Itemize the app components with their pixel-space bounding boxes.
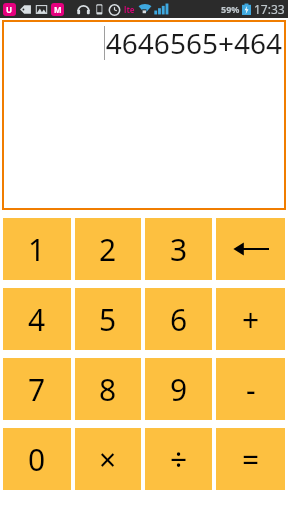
staticText: + (242, 299, 260, 340)
staticText: U (6, 4, 13, 15)
button[interactable]: 3 (145, 218, 212, 280)
button[interactable]: ÷ (145, 428, 212, 490)
button[interactable]: 6 (145, 288, 212, 350)
button[interactable]: 4 (3, 288, 71, 350)
staticText: 9 (170, 369, 188, 410)
staticText: × (99, 439, 117, 480)
button[interactable]: Backspace (216, 218, 285, 280)
button[interactable]: = (216, 428, 285, 490)
button[interactable]: - (216, 358, 285, 420)
button[interactable]: + (216, 288, 285, 350)
staticText: ÷ (170, 439, 188, 480)
staticText: 1 (28, 229, 46, 270)
button[interactable]: 2 (75, 218, 141, 280)
staticText: 17:33 (254, 1, 285, 17)
staticText: = (242, 439, 260, 480)
button[interactable]: 1 (3, 218, 71, 280)
staticText: lte (124, 4, 135, 15)
staticText: M (54, 4, 62, 15)
button[interactable]: 9 (145, 358, 212, 420)
button[interactable]: 0 (3, 428, 71, 490)
staticText: 4646565+464 (105, 24, 282, 62)
staticText: - (246, 369, 256, 410)
staticText: 3 (170, 229, 188, 270)
staticText: 7 (28, 369, 46, 410)
button[interactable]: 8 (75, 358, 141, 420)
button[interactable]: 5 (75, 288, 141, 350)
button[interactable]: × (75, 428, 141, 490)
button[interactable]: 7 (3, 358, 71, 420)
staticText: 2 (99, 229, 117, 270)
staticText: 5 (99, 299, 117, 340)
staticText: 8 (99, 369, 117, 410)
staticText: 59% (221, 3, 240, 15)
staticText: 4 (28, 299, 46, 340)
staticText: 6 (170, 299, 188, 340)
staticText: 0 (28, 439, 46, 480)
